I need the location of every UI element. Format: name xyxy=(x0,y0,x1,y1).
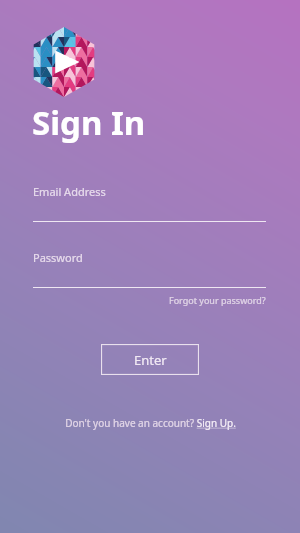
staticText: Forgot your password? xyxy=(169,294,266,306)
other: App logo xyxy=(29,27,99,97)
staticText: Email Address xyxy=(33,184,106,199)
button[interactable]: Password xyxy=(33,250,266,288)
staticText: Password xyxy=(33,250,83,265)
button[interactable]: Email Address xyxy=(33,184,266,222)
button[interactable]: Enter xyxy=(101,344,199,375)
staticText: Don't you have an account? Sign Up. xyxy=(65,416,236,430)
button[interactable]: Forgot your password? xyxy=(169,292,266,308)
button[interactable]: Don't you have an account? Sign Up. xyxy=(65,414,236,432)
staticText: Enter xyxy=(134,351,167,369)
staticText: Sign In xyxy=(32,100,146,145)
